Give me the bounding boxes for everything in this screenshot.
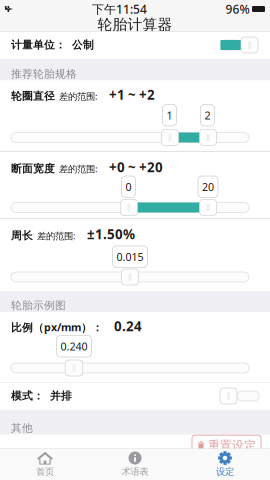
staticText: +1 ~ +2 — [109, 86, 155, 103]
staticText: 96% — [225, 1, 249, 17]
staticText: 公制 — [66, 38, 94, 51]
button[interactable]: 设定 — [180, 449, 270, 480]
staticText: 差的范围: — [59, 162, 98, 175]
staticText: 推荐轮胎规格 — [11, 67, 77, 80]
staticText: +0 ~ +20 — [109, 158, 163, 176]
button[interactable]: 术语表 — [90, 449, 180, 480]
staticText: ±1.50% — [87, 225, 135, 243]
staticText: 断面宽度 — [11, 162, 55, 175]
staticText: 首页 — [36, 466, 54, 477]
staticText: 术语表 — [121, 466, 148, 477]
staticText: 轮胎示例图 — [11, 299, 66, 312]
staticText: 计量单位： — [11, 38, 66, 51]
staticText: 模式： — [11, 389, 44, 402]
staticText: 0.24 — [114, 317, 142, 335]
staticText: 并排 — [44, 389, 72, 402]
staticText: 重置设定 — [208, 438, 256, 453]
staticText: 2 — [204, 108, 210, 122]
staticText: 周长 — [11, 229, 33, 242]
staticText: 20 — [202, 180, 214, 194]
staticText: 0.015 — [116, 250, 143, 264]
button[interactable]: 首页 — [0, 449, 90, 480]
staticText: 比例（px/mm）： — [11, 320, 103, 334]
staticText: 轮胎计算器 — [97, 15, 172, 33]
staticText: 0.240 — [60, 339, 87, 353]
button[interactable]: 模式： — [0, 382, 270, 409]
staticText: 1 — [166, 108, 172, 122]
staticText: 设定 — [216, 466, 234, 477]
staticText: 差的范围: — [59, 90, 98, 102]
staticText: 轮圈直径 — [11, 90, 55, 103]
staticText: 差的范围: — [37, 229, 76, 242]
staticText: 其他 — [11, 421, 33, 434]
staticText: 0 — [125, 180, 131, 194]
button[interactable]: 计量单位： — [0, 31, 270, 58]
staticText: 下午11:54 — [92, 1, 147, 17]
button[interactable]: 重置设定 — [192, 435, 261, 456]
